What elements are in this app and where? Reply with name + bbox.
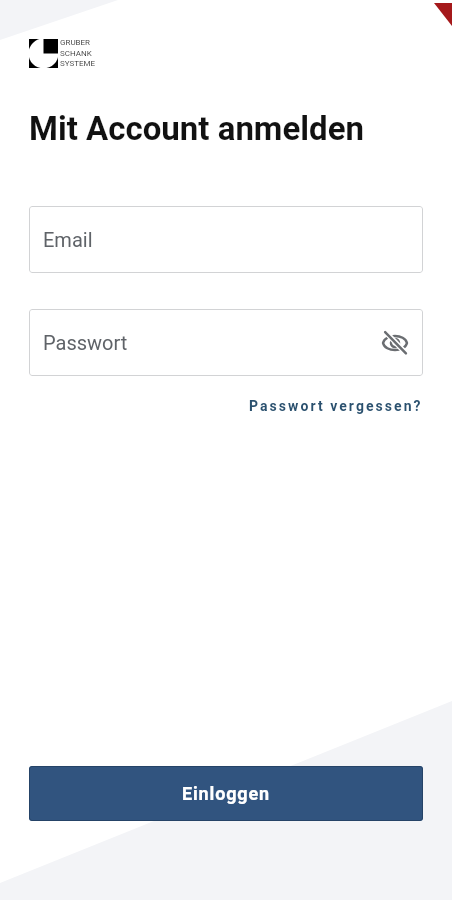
- button[interactable]: Einloggen: [29, 766, 423, 821]
- staticText: Passwort: [43, 331, 128, 354]
- button[interactable]: Passwort: [29, 309, 423, 376]
- staticText: Mit Account anmelden: [29, 109, 364, 148]
- button[interactable]: Show password: [375, 323, 415, 363]
- button[interactable]: Email: [29, 206, 423, 273]
- button[interactable]: Passwort vergessen?: [249, 392, 423, 420]
- staticText: Einloggen: [182, 783, 270, 804]
- staticText: Passwort vergessen?: [249, 398, 423, 414]
- staticText: GRUBER SCHANK SYSTEME: [60, 38, 96, 68]
- staticText: Email: [43, 228, 93, 251]
